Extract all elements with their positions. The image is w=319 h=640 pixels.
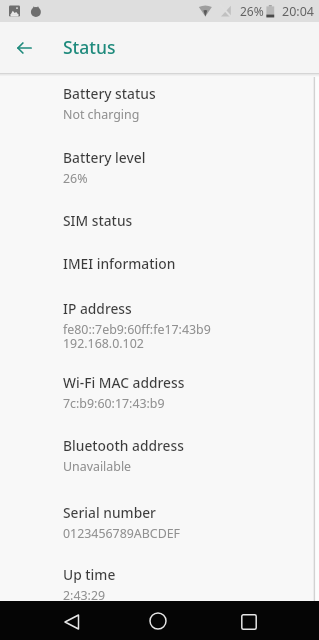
- button[interactable]: Navigate up: [7, 22, 41, 73]
- staticText: IMEI information: [63, 254, 176, 273]
- staticText: Bluetooth address: [63, 436, 184, 455]
- staticText: 0123456789ABCDEF: [63, 525, 181, 542]
- staticText: Serial number: [63, 503, 156, 522]
- button[interactable]: Back: [50, 602, 94, 640]
- staticText: SIM status: [63, 211, 133, 230]
- button[interactable]: IP address: [0, 292, 319, 366]
- staticText: fe80::7eb9:60ff:fe17:43b9 192.168.0.102: [63, 321, 211, 352]
- staticText: Not charging: [63, 106, 140, 123]
- staticText: Status: [63, 35, 116, 59]
- staticText: Battery level: [63, 148, 146, 167]
- staticText: Battery status: [63, 84, 156, 103]
- button[interactable]: Battery status: [0, 77, 319, 141]
- button[interactable]: Bluetooth address: [0, 429, 319, 496]
- button[interactable]: Home: [136, 601, 180, 640]
- staticText: 26%: [240, 3, 264, 19]
- staticText: 2:43:29: [63, 587, 106, 601]
- button[interactable]: Wi-Fi MAC address: [0, 366, 319, 429]
- button[interactable]: Battery level: [0, 141, 319, 204]
- staticText: Unavailable: [63, 458, 132, 475]
- staticText: Up time: [63, 565, 116, 584]
- button[interactable]: SIM status: [0, 204, 319, 247]
- staticText: 20:04: [282, 3, 314, 20]
- button[interactable]: Recent apps: [227, 602, 271, 640]
- staticText: IP address: [63, 299, 132, 318]
- button[interactable]: Up time: [0, 558, 319, 601]
- button[interactable]: IMEI information: [0, 247, 319, 292]
- staticText: 7c:b9:60:17:43:b9: [63, 395, 165, 412]
- staticText: Wi-Fi MAC address: [63, 373, 185, 392]
- button[interactable]: Serial number: [0, 496, 319, 558]
- staticText: 26%: [63, 170, 88, 187]
